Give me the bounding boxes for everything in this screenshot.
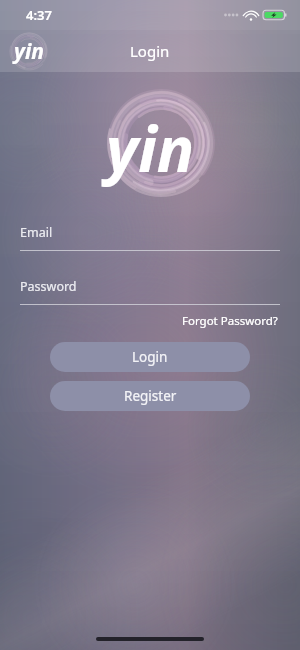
button[interactable]: yin home xyxy=(6,30,52,72)
button[interactable]: Login xyxy=(50,342,250,372)
staticText: Register xyxy=(124,387,177,405)
staticText: Login xyxy=(130,41,170,61)
button[interactable]: Password xyxy=(20,278,280,305)
button[interactable]: Email xyxy=(20,224,280,251)
staticText: Password xyxy=(20,278,77,295)
button[interactable]: Forgot Password? xyxy=(180,311,280,331)
staticText: Login xyxy=(132,348,168,366)
staticText: Email xyxy=(20,224,53,241)
staticText: yin xyxy=(106,106,195,190)
button[interactable]: Register xyxy=(50,381,250,411)
staticText: Forgot Password? xyxy=(182,313,278,329)
staticText: 4:37 xyxy=(26,6,52,24)
staticText: yin xyxy=(14,37,44,66)
